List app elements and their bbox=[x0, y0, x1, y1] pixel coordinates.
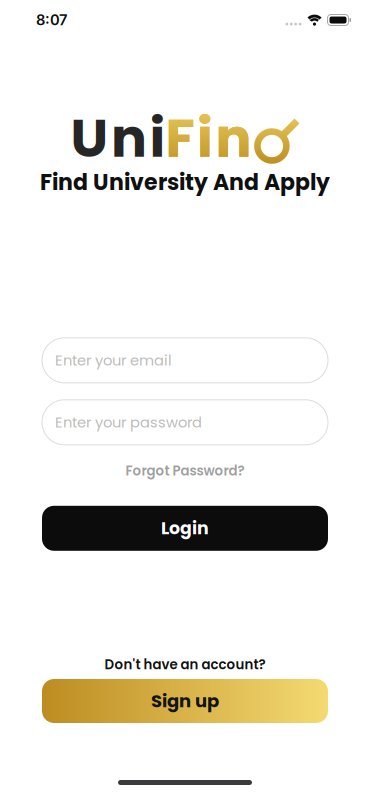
staticText: Enter your email bbox=[55, 350, 172, 370]
button[interactable]: Enter your email bbox=[42, 338, 328, 383]
staticText: Login bbox=[161, 516, 209, 540]
staticText: 8:07 bbox=[36, 11, 67, 29]
button[interactable]: Sign up bbox=[42, 679, 328, 723]
button[interactable]: Enter your password bbox=[42, 400, 328, 445]
staticText: Uni bbox=[70, 101, 165, 175]
staticText: Forgot Password? bbox=[125, 461, 244, 480]
staticText: Fin bbox=[165, 101, 251, 175]
staticText: Enter your password bbox=[55, 412, 202, 432]
staticText: Don't have an account? bbox=[104, 655, 265, 674]
button[interactable]: Forgot Password? bbox=[125, 462, 244, 480]
staticText: Find University And Apply bbox=[40, 167, 330, 198]
staticText: Sign up bbox=[151, 688, 219, 714]
button[interactable]: Login bbox=[42, 506, 328, 551]
